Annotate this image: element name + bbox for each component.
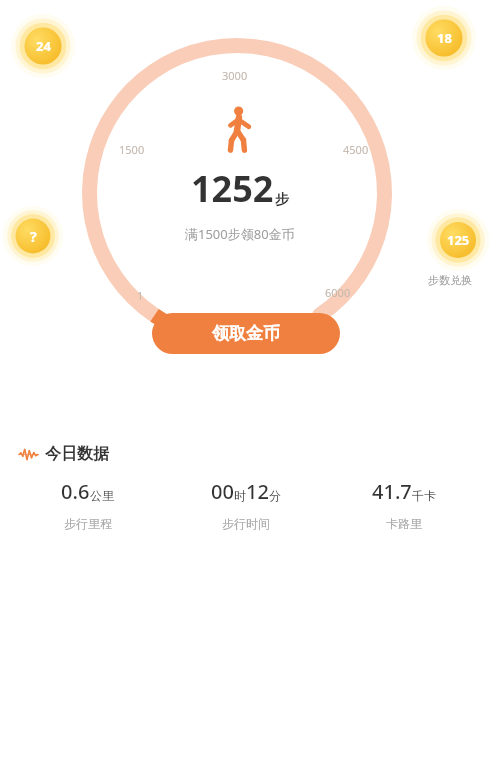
staticText: 步数兑换 [428, 273, 472, 287]
staticText: 6000 [325, 285, 351, 300]
staticText: 满1500步领80金币 [185, 225, 295, 243]
staticText: 4500 [343, 142, 369, 157]
staticText: 步 [275, 191, 289, 209]
staticText: 18 [437, 29, 452, 47]
staticText: 24 [36, 37, 51, 55]
staticText: 时 [234, 488, 246, 503]
button[interactable]: Help [3, 206, 63, 266]
button[interactable]: 18 coins [412, 6, 476, 70]
button[interactable]: 125 coins [427, 209, 489, 271]
staticText: 步行里程 [64, 516, 112, 531]
staticText: ? [30, 227, 37, 246]
staticText: 00 [211, 478, 234, 505]
staticText: 卡路里 [386, 516, 422, 531]
staticText: 0.6 [61, 478, 90, 505]
button[interactable]: 24 coins [11, 14, 75, 78]
staticText: 分 [269, 488, 281, 503]
staticText: 千卡 [412, 488, 436, 503]
staticText: 3000 [222, 68, 248, 83]
button[interactable]: 领取金币 [152, 313, 340, 354]
staticText: 1 [137, 288, 144, 303]
staticText: 41.7 [372, 478, 412, 505]
staticText: 步行时间 [222, 516, 270, 531]
staticText: 12 [246, 478, 269, 505]
staticText: 1500 [119, 142, 145, 157]
staticText: 公里 [90, 488, 114, 503]
staticText: 领取金币 [212, 323, 280, 344]
staticText: 今日数据 [45, 444, 109, 464]
staticText: 1252 [191, 164, 274, 213]
staticText: 125 [447, 231, 470, 249]
